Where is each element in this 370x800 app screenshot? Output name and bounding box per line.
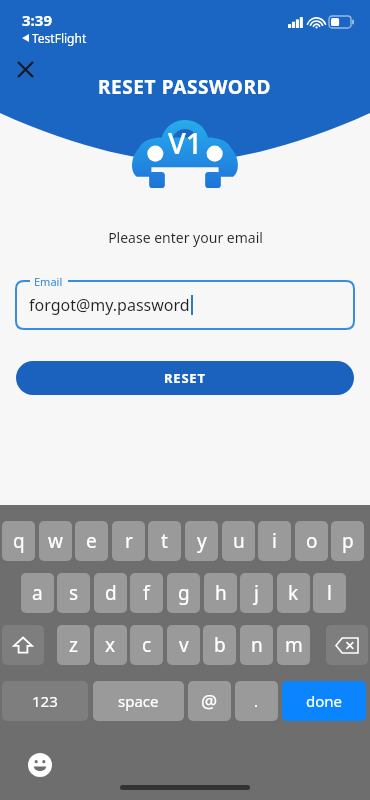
staticText: r <box>125 528 133 554</box>
staticText: k <box>288 580 299 606</box>
button[interactable]: q <box>2 521 35 561</box>
button[interactable]: w <box>39 521 72 561</box>
button[interactable]: l <box>313 573 346 613</box>
button[interactable]: r <box>112 521 145 561</box>
button[interactable]: RESET <box>16 361 354 395</box>
staticText: a <box>32 580 43 606</box>
button[interactable]: n <box>240 625 273 665</box>
button[interactable]: b <box>203 625 236 665</box>
button[interactable]: z <box>57 625 90 665</box>
button[interactable]: Emoji <box>27 752 53 778</box>
staticText: @ <box>201 689 218 714</box>
button[interactable]: . <box>235 681 278 721</box>
staticText: g <box>178 580 190 606</box>
button[interactable]: a <box>21 573 54 613</box>
staticText: d <box>105 580 117 606</box>
button[interactable]: m <box>277 625 310 665</box>
button[interactable]: 123 <box>2 681 88 721</box>
button[interactable]: k <box>277 573 310 613</box>
button[interactable]: c <box>130 625 163 665</box>
staticText: o <box>306 528 318 554</box>
button[interactable]: g <box>167 573 200 613</box>
staticText: w <box>48 528 63 554</box>
staticText: p <box>342 528 354 554</box>
staticText: y <box>197 528 207 554</box>
staticText: u <box>233 528 245 554</box>
staticText: l <box>327 580 332 606</box>
staticText: h <box>215 580 227 606</box>
button[interactable]: s <box>57 573 90 613</box>
staticText: . <box>254 691 259 711</box>
staticText: RESET PASSWORD <box>98 74 272 100</box>
staticText: b <box>214 632 226 658</box>
button[interactable]: j <box>240 573 273 613</box>
button[interactable]: o <box>295 521 328 561</box>
staticText: c <box>142 632 152 658</box>
staticText: m <box>285 632 303 658</box>
staticText: V1 <box>168 123 203 162</box>
button[interactable]: Backspace <box>326 625 368 665</box>
staticText: j <box>254 580 259 606</box>
button[interactable]: u <box>222 521 255 561</box>
button[interactable]: @ <box>188 681 231 721</box>
staticText: 3:39 <box>22 10 52 30</box>
button[interactable]: x <box>94 625 127 665</box>
staticText: z <box>69 632 78 658</box>
button[interactable]: p <box>331 521 364 561</box>
button[interactable]: space <box>93 681 184 721</box>
staticText: Email <box>34 274 63 289</box>
button[interactable]: y <box>185 521 218 561</box>
staticText: TestFlight <box>32 30 87 46</box>
button[interactable]: t <box>148 521 181 561</box>
staticText: x <box>105 632 116 658</box>
button[interactable]: Email <box>16 281 354 329</box>
staticText: i <box>272 528 277 554</box>
staticText: RESET <box>164 369 206 387</box>
staticText: space <box>118 691 159 711</box>
staticText: forgot@my.password <box>29 294 190 316</box>
staticText: n <box>251 632 263 658</box>
staticText: v <box>179 632 189 658</box>
button[interactable]: Shift <box>2 625 44 665</box>
button[interactable]: d <box>94 573 127 613</box>
staticText: 123 <box>32 691 58 711</box>
button[interactable]: f <box>130 573 163 613</box>
staticText: e <box>86 528 97 554</box>
staticText: q <box>13 528 25 554</box>
staticText: s <box>69 580 79 606</box>
staticText: Please enter your email <box>108 228 263 247</box>
button[interactable]: done <box>282 681 366 721</box>
button[interactable]: i <box>258 521 291 561</box>
button[interactable]: e <box>75 521 108 561</box>
staticText: done <box>306 691 343 711</box>
button[interactable]: Close <box>10 54 40 84</box>
staticText: f <box>143 580 150 606</box>
button[interactable]: h <box>204 573 237 613</box>
button[interactable]: v <box>167 625 200 665</box>
staticText: t <box>161 528 168 554</box>
